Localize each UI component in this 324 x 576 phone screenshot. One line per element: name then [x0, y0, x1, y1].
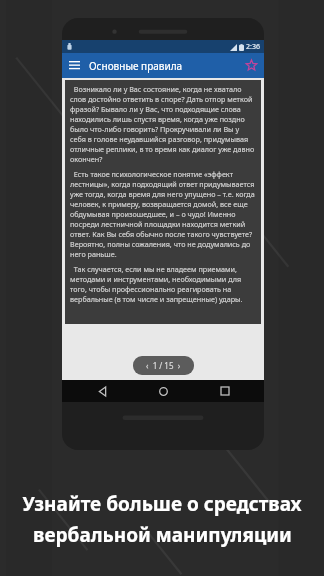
- staticText: Основные правила: [89, 59, 183, 73]
- button[interactable]: Add to favourites: [239, 53, 264, 78]
- button[interactable]: Home: [141, 380, 185, 402]
- staticText: Возникало ли у Вас состояние, когда не х…: [70, 84, 256, 164]
- button[interactable]: Recent apps: [203, 380, 247, 402]
- staticText: 2:36: [246, 42, 260, 52]
- button[interactable]: Back: [80, 380, 124, 402]
- button[interactable]: ‹ 1 / 15 ›: [133, 356, 194, 375]
- staticText: Есть такое психологическое понятие «эффе…: [70, 169, 256, 259]
- button[interactable]: Open navigation menu: [62, 53, 87, 78]
- staticText: вербальной манипуляции: [33, 522, 292, 548]
- staticText: Так случается, если мы не владеем приема…: [70, 264, 256, 304]
- staticText: ‹ 1 / 15 ›: [146, 360, 181, 371]
- staticText: Узнайте больше о средствах: [22, 491, 302, 517]
